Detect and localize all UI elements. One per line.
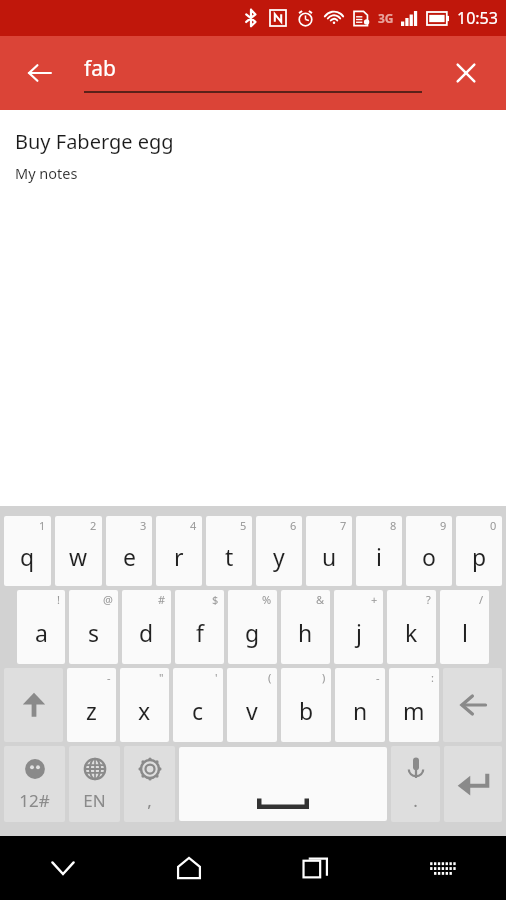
button[interactable]: Backspace <box>443 668 502 742</box>
staticText: n <box>353 695 368 726</box>
staticText: % <box>262 592 272 607</box>
staticText: My notes <box>15 163 78 183</box>
button[interactable]: 12# <box>4 746 65 822</box>
staticText: & <box>316 592 325 607</box>
staticText: p <box>472 541 487 572</box>
button[interactable]: ( <box>227 668 277 742</box>
staticText: , <box>147 789 152 812</box>
button[interactable]: 7 <box>306 516 352 586</box>
staticText: v <box>246 695 258 726</box>
staticText: . <box>413 789 418 812</box>
staticText: k <box>405 617 418 648</box>
staticText: 3 <box>140 518 147 533</box>
button[interactable]: 3 <box>106 516 152 586</box>
staticText: m <box>403 695 425 726</box>
button[interactable]: 0 <box>456 516 502 586</box>
staticText: 5 <box>240 518 247 533</box>
staticText: a <box>35 617 48 648</box>
staticText: : <box>431 670 434 685</box>
staticText: # <box>158 592 166 607</box>
button[interactable]: EN <box>69 746 120 822</box>
staticText: c <box>192 695 204 726</box>
button[interactable]: % <box>228 590 277 664</box>
button[interactable]: " <box>120 668 169 742</box>
staticText: ( <box>268 670 272 685</box>
button[interactable]: / <box>440 590 489 664</box>
staticText: / <box>479 592 484 607</box>
staticText: @ <box>103 592 113 607</box>
button[interactable]: ? <box>387 590 436 664</box>
staticText: j <box>356 617 362 648</box>
button[interactable]: Enter <box>444 746 502 822</box>
button[interactable]: . <box>391 746 440 822</box>
button[interactable]: 2 <box>55 516 102 586</box>
staticText: d <box>139 617 154 648</box>
staticText: EN <box>83 789 106 812</box>
staticText: 0 <box>490 518 497 533</box>
staticText: 4 <box>190 518 197 533</box>
button[interactable]: 9 <box>406 516 452 586</box>
staticText: g <box>245 617 260 648</box>
button[interactable]: - <box>67 668 116 742</box>
staticText: ' <box>215 670 218 685</box>
button[interactable]: - <box>335 668 385 742</box>
button[interactable]: 1 <box>4 516 51 586</box>
button[interactable]: + <box>334 590 383 664</box>
staticText: x <box>138 695 151 726</box>
button[interactable]: ! <box>17 590 65 664</box>
staticText: 2 <box>90 518 97 533</box>
staticText: Buy Faberge egg <box>15 128 174 155</box>
staticText: $ <box>212 592 219 607</box>
staticText: t <box>225 541 234 572</box>
button[interactable]: : <box>389 668 439 742</box>
staticText: s <box>88 617 100 648</box>
staticText: fab <box>84 54 116 83</box>
button[interactable]: ' <box>173 668 223 742</box>
staticText: f <box>196 617 204 648</box>
staticText: o <box>422 541 436 572</box>
staticText: e <box>123 541 136 572</box>
staticText: h <box>298 617 313 648</box>
staticText: 1 <box>39 518 46 533</box>
button[interactable]: Space <box>179 747 387 821</box>
staticText: ? <box>426 592 431 607</box>
button[interactable]: Back <box>14 47 66 99</box>
button[interactable]: Home <box>126 836 252 900</box>
staticText: z <box>86 695 97 726</box>
button[interactable]: Clear search <box>440 47 492 99</box>
button[interactable]: 6 <box>256 516 302 586</box>
staticText: - <box>107 670 111 685</box>
staticText: y <box>273 541 285 572</box>
staticText: + <box>371 592 378 607</box>
button[interactable]: & <box>281 590 330 664</box>
staticText: " <box>159 670 164 685</box>
staticText: l <box>462 617 468 648</box>
button[interactable]: Buy Faberge egg <box>0 110 506 506</box>
button[interactable]: Hide keyboard <box>0 836 126 900</box>
button[interactable]: 4 <box>156 516 202 586</box>
button[interactable]: # <box>122 590 171 664</box>
staticText: ) <box>322 670 326 685</box>
staticText: i <box>376 541 382 572</box>
staticText: 3G <box>378 10 394 26</box>
button[interactable]: 5 <box>206 516 252 586</box>
staticText: 9 <box>440 518 447 533</box>
staticText: u <box>322 541 337 572</box>
staticText: 10:53 <box>457 7 498 29</box>
button[interactable]: ) <box>281 668 331 742</box>
staticText: 8 <box>390 518 397 533</box>
staticText: 12# <box>19 789 50 812</box>
button[interactable]: , <box>124 746 175 822</box>
staticText: b <box>299 695 314 726</box>
staticText: w <box>69 541 88 572</box>
button[interactable]: Shift <box>4 668 63 742</box>
button[interactable]: $ <box>175 590 224 664</box>
staticText: 7 <box>340 518 347 533</box>
button[interactable]: @ <box>69 590 118 664</box>
button[interactable]: Switch keyboard <box>379 836 506 900</box>
staticText: 6 <box>290 518 297 533</box>
button[interactable]: Recent apps <box>252 836 379 900</box>
button[interactable]: 8 <box>356 516 402 586</box>
staticText: r <box>174 541 184 572</box>
staticText: ! <box>57 592 60 607</box>
